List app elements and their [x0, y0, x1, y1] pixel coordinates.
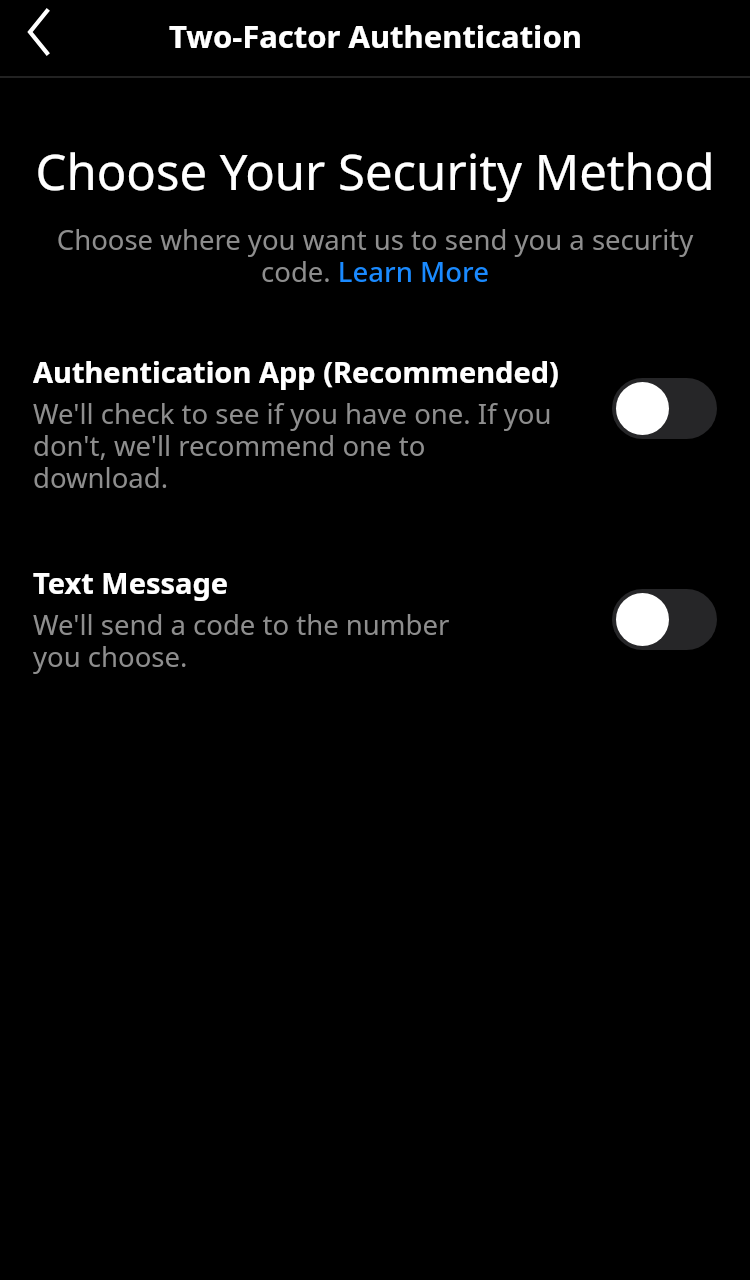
staticText: Choose Your Security Method: [20, 138, 730, 205]
staticText: Authentication App (Recommended): [33, 352, 559, 391]
button[interactable]: Toggle Text Message: [612, 589, 717, 650]
staticText: Text Message: [33, 563, 229, 602]
button[interactable]: Text Message: [0, 563, 750, 675]
button[interactable]: [612, 589, 717, 650]
button[interactable]: Choose where you want us to send you a s…: [22, 221, 728, 290]
button[interactable]: Authentication App (Recommended): [0, 352, 750, 496]
staticText: We'll check to see if you have one. If y…: [33, 395, 552, 496]
staticText: Two-Factor Authentication: [169, 15, 582, 57]
button[interactable]: Back: [0, 0, 76, 76]
button[interactable]: Toggle Authentication App (Recommended): [612, 378, 717, 439]
button[interactable]: [612, 378, 717, 439]
staticText: We'll send a code to the number you choo…: [33, 606, 450, 675]
